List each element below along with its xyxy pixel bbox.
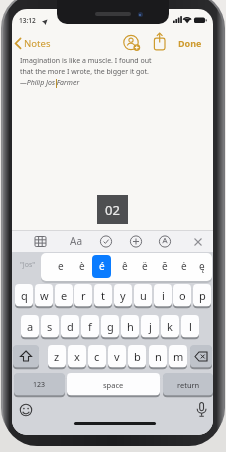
staticText: é <box>99 259 105 273</box>
staticText: h <box>127 319 134 334</box>
button[interactable]: o <box>173 284 191 307</box>
staticText: ê <box>122 259 128 273</box>
staticText: return <box>177 380 200 390</box>
button[interactable] <box>122 33 142 53</box>
button[interactable]: a <box>21 315 39 338</box>
staticText: Aa <box>70 234 82 248</box>
button[interactable]: l <box>181 315 199 338</box>
staticText: x <box>74 349 80 364</box>
staticText: b <box>134 349 141 364</box>
staticText: 13:12 <box>19 16 36 25</box>
button[interactable] <box>19 403 33 417</box>
button[interactable] <box>195 401 208 419</box>
staticText: a <box>27 319 34 334</box>
button[interactable]: m <box>169 345 187 368</box>
button[interactable]: r <box>74 284 92 307</box>
staticText: q <box>21 288 28 303</box>
button[interactable]: j <box>141 315 159 338</box>
staticText: v <box>114 349 120 364</box>
button[interactable]: t <box>94 284 112 307</box>
staticText: d <box>67 319 74 334</box>
staticText: c <box>94 349 100 364</box>
staticText: 02 <box>105 201 120 219</box>
staticText: w <box>40 288 49 303</box>
staticText: r <box>81 288 86 303</box>
button[interactable]: i <box>154 284 172 307</box>
button[interactable]: p <box>193 284 211 307</box>
staticText: u <box>140 288 147 303</box>
staticText: that the more I wrote, the bigger it got… <box>20 67 149 77</box>
staticText: i <box>162 288 165 303</box>
button[interactable]: Done <box>178 37 202 49</box>
staticText: space <box>103 380 124 390</box>
button[interactable] <box>190 345 212 368</box>
button[interactable]: w <box>35 284 53 307</box>
staticText: 123 <box>33 380 46 390</box>
staticText: e <box>61 288 68 303</box>
staticText: p <box>199 288 206 303</box>
button[interactable]: z <box>48 345 66 368</box>
staticText: ę <box>199 259 205 273</box>
button[interactable]: space <box>67 373 160 396</box>
staticText: k <box>167 319 173 334</box>
button[interactable]: 123 <box>14 373 65 396</box>
button[interactable]: n <box>149 345 167 368</box>
staticText: ē <box>162 259 168 273</box>
button[interactable]: x <box>68 345 86 368</box>
staticText: è <box>79 259 85 273</box>
staticText: y <box>120 288 126 303</box>
staticText: j <box>149 319 152 334</box>
button[interactable]: h <box>121 315 139 338</box>
staticText: "Jos" <box>20 260 36 270</box>
button[interactable]: k <box>161 315 179 338</box>
button[interactable]: y <box>114 284 132 307</box>
staticText: l <box>189 319 192 334</box>
button[interactable]: g <box>101 315 119 338</box>
staticText: Notes <box>24 37 51 50</box>
staticText: n <box>155 349 162 364</box>
button[interactable] <box>99 235 113 249</box>
staticText: t <box>101 288 105 303</box>
button[interactable]: q <box>15 284 33 307</box>
button[interactable]: b <box>128 345 146 368</box>
button[interactable] <box>192 236 204 248</box>
staticText: z <box>54 349 60 364</box>
button[interactable]: return <box>163 373 213 396</box>
staticText: g <box>107 319 114 334</box>
button[interactable]: f <box>81 315 99 338</box>
button[interactable]: d <box>61 315 79 338</box>
button[interactable] <box>13 345 39 368</box>
button[interactable] <box>158 235 172 249</box>
staticText: m <box>173 349 184 364</box>
button[interactable]: v <box>108 345 126 368</box>
staticText: ė <box>181 259 187 273</box>
button[interactable] <box>129 235 143 249</box>
button[interactable]: s <box>41 315 59 338</box>
button[interactable]: Aa <box>67 233 84 249</box>
staticText: o <box>179 288 186 303</box>
button[interactable] <box>92 255 111 278</box>
staticText: —Philip Jos Farmer <box>20 78 80 88</box>
staticText: ë <box>142 259 148 273</box>
staticText: s <box>47 319 53 334</box>
button[interactable]: c <box>88 345 106 368</box>
button[interactable]: u <box>134 284 152 307</box>
staticText: Imagination is like a muscle. I found ou… <box>20 56 152 66</box>
button[interactable]: e <box>55 284 73 307</box>
button[interactable] <box>151 31 169 53</box>
button[interactable]: Notes <box>12 34 72 52</box>
staticText: e <box>58 259 64 273</box>
button[interactable] <box>33 235 48 248</box>
staticText: f <box>88 319 92 334</box>
